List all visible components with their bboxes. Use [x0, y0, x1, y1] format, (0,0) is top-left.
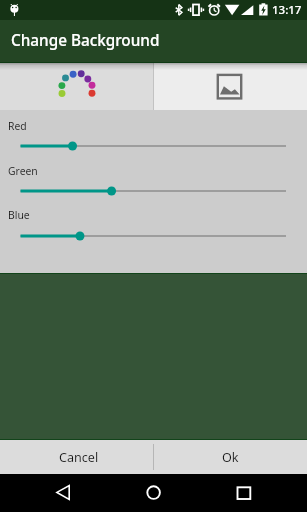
- staticText: Red: [8, 119, 27, 133]
- staticText: Ok: [222, 449, 239, 466]
- button[interactable]: Home: [134, 474, 172, 512]
- button[interactable]: Colour picker tab: [0, 63, 153, 110]
- staticText: 13:17: [272, 2, 302, 18]
- staticText: Green: [8, 164, 38, 178]
- button[interactable]: Blue slider: [0, 228, 307, 244]
- button[interactable]: Back: [44, 474, 82, 512]
- button[interactable]: Red slider: [0, 138, 307, 154]
- button[interactable]: Image tab: [154, 63, 307, 110]
- button[interactable]: Green slider: [0, 183, 307, 199]
- staticText: Change Background: [11, 30, 160, 51]
- staticText: Cancel: [59, 449, 99, 466]
- staticText: Blue: [8, 208, 30, 222]
- button[interactable]: Ok: [154, 440, 307, 474]
- button[interactable]: Recents: [224, 474, 262, 512]
- button[interactable]: Cancel: [0, 440, 153, 474]
